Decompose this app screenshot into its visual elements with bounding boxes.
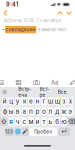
staticText: 123 xyxy=(5,129,13,135)
staticText: Все xyxy=(58,89,67,95)
button[interactable]: ж xyxy=(61,107,66,116)
button[interactable]: ⇧ xyxy=(0,117,7,126)
staticText: с xyxy=(22,118,26,125)
staticText: совпадение xyxy=(6,27,36,32)
button[interactable]: э xyxy=(67,107,73,116)
button[interactable]: х xyxy=(67,97,73,105)
staticText: е xyxy=(29,97,33,105)
button[interactable]: Insert photo xyxy=(0,78,5,86)
staticText: д xyxy=(55,107,59,115)
button[interactable]: в xyxy=(15,107,21,116)
staticText: и xyxy=(35,118,39,125)
staticText: ⇧ xyxy=(1,118,7,125)
staticText: а xyxy=(22,107,26,115)
button[interactable]: Show predictions xyxy=(0,87,10,96)
staticText: Aa xyxy=(51,79,58,86)
button[interactable]: 🎤 xyxy=(22,128,28,136)
button[interactable]: ш xyxy=(48,97,53,105)
staticText: л xyxy=(49,107,53,115)
button[interactable]: ф xyxy=(2,107,7,116)
button[interactable]: б xyxy=(54,117,60,126)
staticText: у xyxy=(16,97,20,105)
button[interactable]: т xyxy=(41,117,47,126)
button[interactable]: 🌐 xyxy=(14,128,21,136)
staticText: о xyxy=(42,107,46,115)
button[interactable]: и xyxy=(35,117,40,126)
button[interactable]: Markup xyxy=(67,78,75,86)
staticText: в заметке текст xyxy=(38,27,67,32)
staticText: ж xyxy=(61,107,66,115)
button[interactable]: ⌫ xyxy=(67,117,75,126)
staticText: Встре xyxy=(39,86,49,98)
staticText: б xyxy=(55,118,59,125)
staticText: ь xyxy=(49,118,53,125)
button[interactable]: Insert table xyxy=(13,78,23,86)
staticText: я xyxy=(9,118,13,125)
button[interactable]: ц xyxy=(9,97,14,105)
button[interactable]: Scan document xyxy=(31,78,41,86)
staticText: в xyxy=(16,107,20,115)
button[interactable]: п xyxy=(28,107,34,116)
staticText: ы xyxy=(9,107,14,115)
button[interactable]: к xyxy=(22,97,27,105)
staticText: э xyxy=(68,107,72,115)
button[interactable]: Next match xyxy=(64,9,73,17)
button[interactable]: н xyxy=(35,97,40,105)
button[interactable]: Back xyxy=(0,9,11,17)
staticText: Встреча: 10:18. 21 сентября xyxy=(4,18,61,23)
staticText: м xyxy=(28,118,33,125)
button[interactable]: г xyxy=(41,97,47,105)
staticText: р xyxy=(35,107,39,115)
button[interactable]: щ xyxy=(54,97,60,105)
button[interactable]: я xyxy=(9,117,14,126)
staticText: з xyxy=(62,97,65,105)
staticText: ч xyxy=(16,118,20,125)
staticText: г xyxy=(42,97,45,105)
staticText: ф xyxy=(3,107,7,115)
button[interactable]: л xyxy=(48,107,53,116)
button[interactable]: Previous match xyxy=(55,9,64,17)
button[interactable]: 123 xyxy=(5,128,13,136)
button[interactable]: с xyxy=(22,117,27,126)
button[interactable]: д xyxy=(54,107,60,116)
staticText: х xyxy=(69,97,72,105)
staticText: т xyxy=(42,118,45,125)
button[interactable]: р xyxy=(35,107,40,116)
staticText: Встреча xyxy=(18,86,31,98)
button[interactable]: м xyxy=(28,117,34,126)
staticText: ц xyxy=(9,97,13,105)
button[interactable]: е xyxy=(28,97,34,105)
button[interactable]: Text format xyxy=(49,78,59,86)
button[interactable]: й xyxy=(2,97,7,105)
staticText: ⌫ xyxy=(68,118,75,125)
button[interactable]: ю xyxy=(61,117,66,126)
staticText: к xyxy=(23,97,26,105)
staticText: щ xyxy=(55,97,60,105)
staticText: 🎤 xyxy=(22,129,28,135)
button[interactable]: ↵ xyxy=(58,128,70,136)
button[interactable]: у xyxy=(15,97,21,105)
staticText: й xyxy=(3,97,7,105)
staticText: ю xyxy=(61,118,66,125)
staticText: Пробел xyxy=(34,129,52,135)
staticText: ↵ xyxy=(61,128,67,135)
button[interactable]: о xyxy=(41,107,47,116)
button[interactable]: ь xyxy=(48,117,53,126)
button[interactable]: Пробел xyxy=(29,128,57,136)
staticText: п xyxy=(29,107,33,115)
button[interactable]: з xyxy=(61,97,66,105)
button[interactable]: а xyxy=(22,107,27,116)
staticText: н xyxy=(35,97,39,105)
staticText: 9:41 xyxy=(6,1,18,8)
staticText: 🌐 xyxy=(15,129,21,135)
staticText: ш xyxy=(48,97,53,105)
button[interactable]: ы xyxy=(9,107,14,116)
button[interactable]: ч xyxy=(15,117,21,126)
